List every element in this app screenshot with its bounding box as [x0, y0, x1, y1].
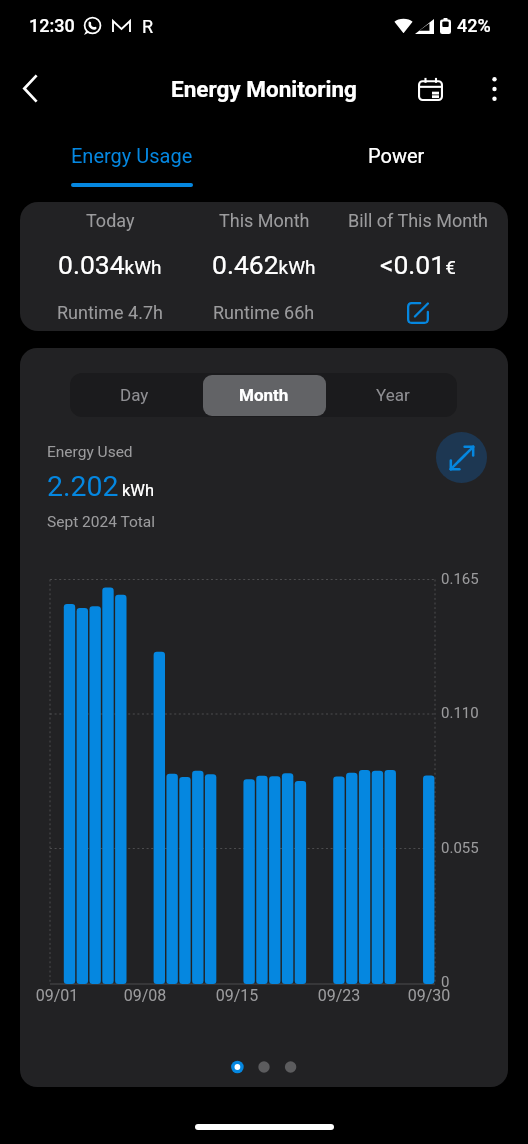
- staticText: 0.462kWh: [212, 249, 316, 280]
- button[interactable]: Year: [328, 373, 457, 417]
- staticText: 0.034kWh: [58, 249, 162, 280]
- button[interactable]: Calendar: [406, 65, 454, 113]
- button[interactable]: Edit bill: [403, 298, 433, 328]
- staticText: Bill of This Month: [348, 210, 488, 231]
- staticText: kWh: [122, 481, 155, 500]
- staticText: 09/08: [105, 986, 185, 1005]
- staticText: <0.01€: [380, 249, 456, 280]
- button[interactable]: More options: [470, 65, 518, 113]
- staticText: Energy Usage: [71, 144, 193, 167]
- staticText: 09/30: [389, 986, 469, 1005]
- staticText: Energy Used: [47, 443, 133, 461]
- staticText: Energy Monitoring: [0, 76, 528, 102]
- staticText: 0.165: [441, 570, 479, 588]
- staticText: Month: [239, 385, 289, 405]
- staticText: R: [142, 16, 154, 37]
- staticText: 09/15: [197, 986, 277, 1005]
- staticText: 0.055: [441, 839, 479, 857]
- button[interactable]: Power: [264, 130, 528, 192]
- staticText: 09/01: [20, 986, 97, 1005]
- staticText: 0.110: [441, 704, 479, 722]
- staticText: Runtime 4.7h: [57, 302, 163, 323]
- staticText: 0: [441, 973, 450, 991]
- staticText: Runtime 66h: [213, 302, 315, 323]
- staticText: 42%: [457, 15, 491, 36]
- button[interactable]: Expand chart: [436, 432, 487, 483]
- staticText: 2.202: [47, 470, 119, 503]
- staticText: This Month: [219, 210, 310, 231]
- staticText: Day: [120, 385, 149, 405]
- button[interactable]: Energy Usage: [0, 130, 264, 192]
- button[interactable]: Month: [199, 373, 328, 417]
- staticText: 09/23: [299, 986, 379, 1005]
- staticText: Year: [376, 385, 410, 405]
- staticText: 12:30: [29, 15, 75, 36]
- staticText: Power: [368, 144, 425, 167]
- staticText: Today: [86, 210, 135, 231]
- button[interactable]: Back: [6, 64, 54, 112]
- staticText: Sept 2024 Total: [47, 513, 156, 531]
- button[interactable]: Day: [70, 373, 199, 417]
